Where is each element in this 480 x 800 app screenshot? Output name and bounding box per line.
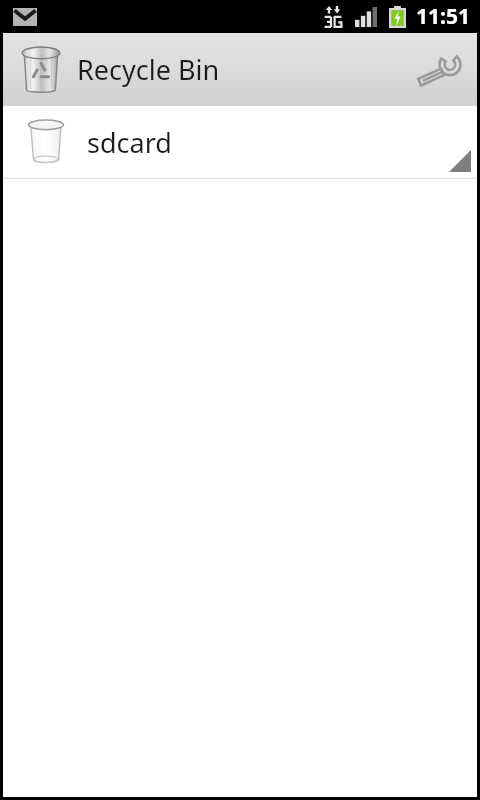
button[interactable]: sdcard (3, 106, 477, 178)
button[interactable]: Settings (411, 43, 465, 97)
button[interactable]: Recycle Bin (3, 33, 477, 106)
staticText: sdcard (87, 124, 172, 161)
staticText: 11:51 (416, 2, 470, 31)
staticText: Recycle Bin (77, 51, 220, 88)
